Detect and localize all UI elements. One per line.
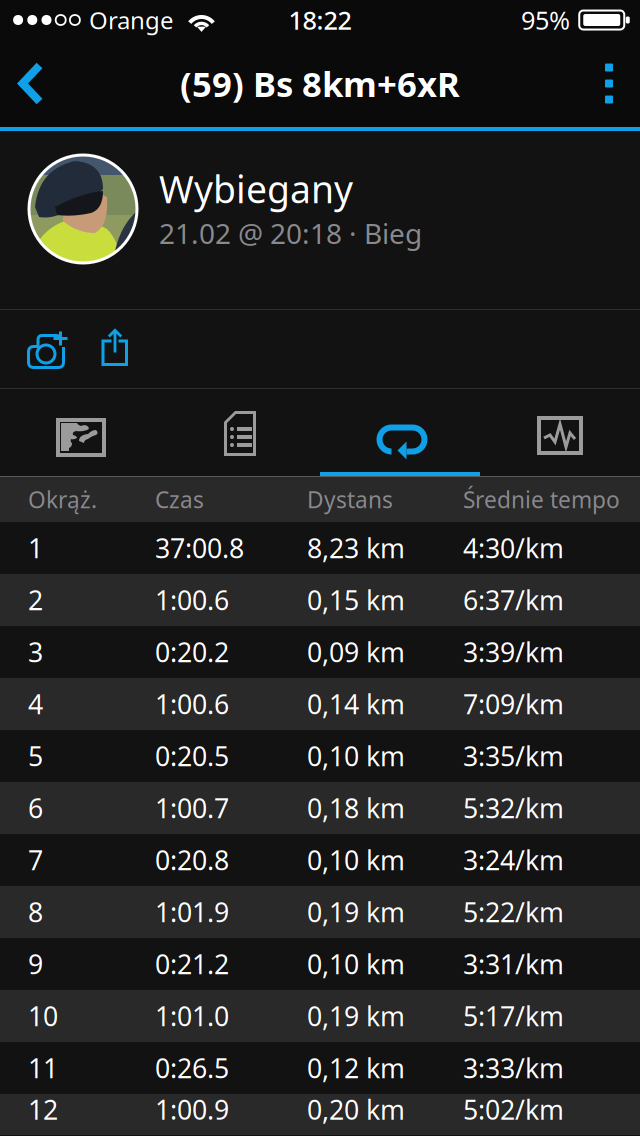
staticText: 0,19 km <box>307 998 405 1034</box>
staticText: 0,12 km <box>307 1050 405 1086</box>
staticText: 0,15 km <box>307 582 405 618</box>
staticText: 3:24/km <box>463 842 564 878</box>
staticText: 0,20 km <box>307 1092 405 1127</box>
staticText: 21.02 @ 20:18 · Bieg <box>159 215 422 252</box>
staticText: 6:37/km <box>463 582 564 618</box>
staticText: 3:33/km <box>463 1050 564 1086</box>
staticText: Średnie tempo <box>463 484 620 514</box>
staticText: 11 <box>28 1050 58 1086</box>
staticText: 0,10 km <box>307 738 405 774</box>
staticText: 0:21.2 <box>155 946 229 982</box>
staticText: 0:20.8 <box>155 842 229 878</box>
staticText: Orange <box>89 4 174 36</box>
button[interactable]: Charts <box>480 389 640 476</box>
staticText: 1:00.6 <box>155 582 229 618</box>
staticText: 0:20.2 <box>155 634 229 670</box>
staticText: 10 <box>28 998 58 1034</box>
staticText: 3:39/km <box>463 634 564 670</box>
staticText: 0,10 km <box>307 842 405 878</box>
staticText: 7:09/km <box>463 686 564 722</box>
staticText: 1:00.7 <box>155 790 229 826</box>
staticText: 2 <box>28 582 43 618</box>
staticText: 95% <box>521 3 570 37</box>
staticText: 1:00.6 <box>155 686 229 722</box>
button[interactable]: More options <box>578 39 640 127</box>
staticText: 1:00.9 <box>155 1092 229 1127</box>
staticText: 3:35/km <box>463 738 564 774</box>
staticText: Wybiegany <box>159 164 353 214</box>
staticText: 1:01.0 <box>155 998 229 1034</box>
staticText: 5:32/km <box>463 790 564 826</box>
staticText: 5 <box>28 738 43 774</box>
staticText: 0:26.5 <box>155 1050 229 1086</box>
staticText: 5:02/km <box>463 1092 564 1127</box>
staticText: 4 <box>28 686 43 722</box>
button[interactable]: Back <box>0 39 62 127</box>
button[interactable]: Laps <box>320 389 480 476</box>
staticText: 8 <box>28 894 43 930</box>
staticText: 12 <box>28 1092 58 1127</box>
staticText: 7 <box>28 842 43 878</box>
staticText: 0,19 km <box>307 894 405 930</box>
staticText: 1 <box>28 530 43 566</box>
staticText: 0,10 km <box>307 946 405 982</box>
staticText: 0,18 km <box>307 790 405 826</box>
staticText: 0,09 km <box>307 634 405 670</box>
staticText: 5:22/km <box>463 894 564 930</box>
button[interactable]: Add photo <box>9 310 83 388</box>
staticText: Okrąż. <box>28 484 97 514</box>
staticText: 4:30/km <box>463 530 564 566</box>
staticText: 3 <box>28 634 43 670</box>
staticText: (59) Bs 8km+6xR <box>180 60 460 106</box>
staticText: 18:22 <box>288 3 351 37</box>
staticText: 8,23 km <box>307 530 405 566</box>
staticText: 6 <box>28 790 43 826</box>
staticText: 5:17/km <box>463 998 564 1034</box>
button[interactable]: Summary <box>160 389 320 476</box>
staticText: 3:31/km <box>463 946 564 982</box>
staticText: 1:01.9 <box>155 894 229 930</box>
staticText: Dystans <box>307 484 393 514</box>
staticText: 0:20.5 <box>155 738 229 774</box>
staticText: Czas <box>155 484 204 514</box>
button[interactable]: Map <box>0 389 160 476</box>
staticText: 9 <box>28 946 43 982</box>
staticText: 37:00.8 <box>155 530 244 566</box>
button[interactable]: Share <box>81 303 149 381</box>
staticText: 0,14 km <box>307 686 405 722</box>
